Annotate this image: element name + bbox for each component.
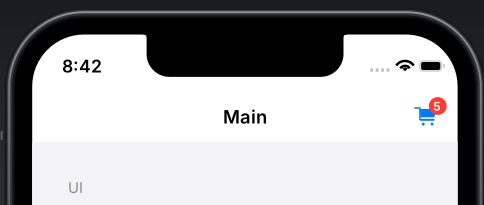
staticText: Main bbox=[223, 106, 267, 128]
staticText: 5 bbox=[433, 99, 441, 114]
button[interactable]: Cart, 5 items bbox=[0, 0, 484, 205]
staticText: UI bbox=[68, 179, 83, 196]
staticText: 8:42 bbox=[62, 56, 102, 77]
